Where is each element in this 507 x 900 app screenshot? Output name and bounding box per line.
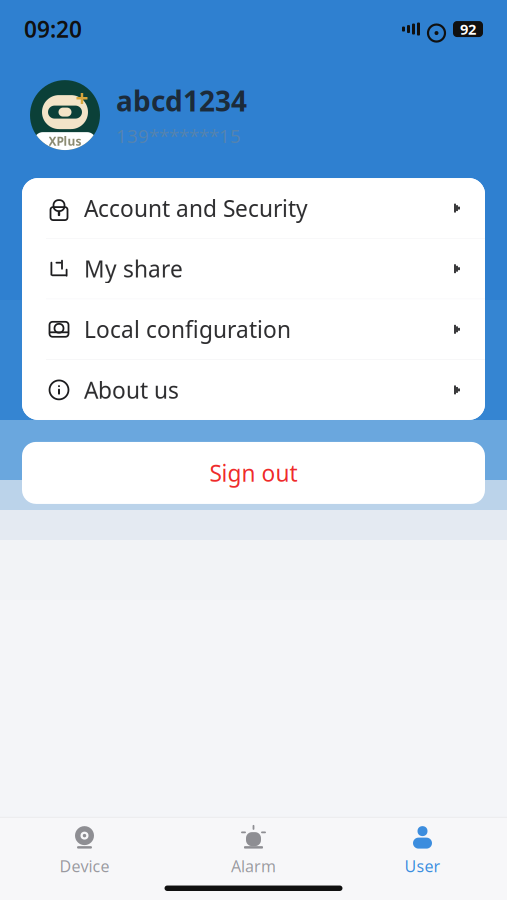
staticText: My share xyxy=(84,254,183,284)
staticText: abcd1234 xyxy=(116,82,247,119)
staticText: About us xyxy=(84,375,179,405)
staticText: 139*******15 xyxy=(116,123,241,148)
staticText: Local configuration xyxy=(84,314,291,344)
staticText: User xyxy=(404,855,440,877)
staticText: Sign out xyxy=(209,458,297,488)
button[interactable]: Sign out xyxy=(22,442,485,504)
staticText: 09:20 xyxy=(24,14,82,44)
staticText: XPlus xyxy=(48,133,81,149)
button[interactable]: User xyxy=(338,816,507,877)
button[interactable]: About us xyxy=(22,360,485,420)
button[interactable]: Alarm xyxy=(169,816,338,877)
staticText: + xyxy=(75,83,88,113)
button[interactable]: Device xyxy=(0,816,169,877)
staticText: Account and Security xyxy=(84,193,308,223)
button[interactable]: Account and Security xyxy=(22,178,485,238)
staticText: Device xyxy=(59,855,109,877)
staticText: Alarm xyxy=(231,855,276,877)
staticText: 92 xyxy=(460,19,476,39)
button[interactable]: My share xyxy=(22,239,485,299)
button[interactable]: Local configuration xyxy=(22,299,485,359)
button[interactable]: + xyxy=(0,80,507,150)
